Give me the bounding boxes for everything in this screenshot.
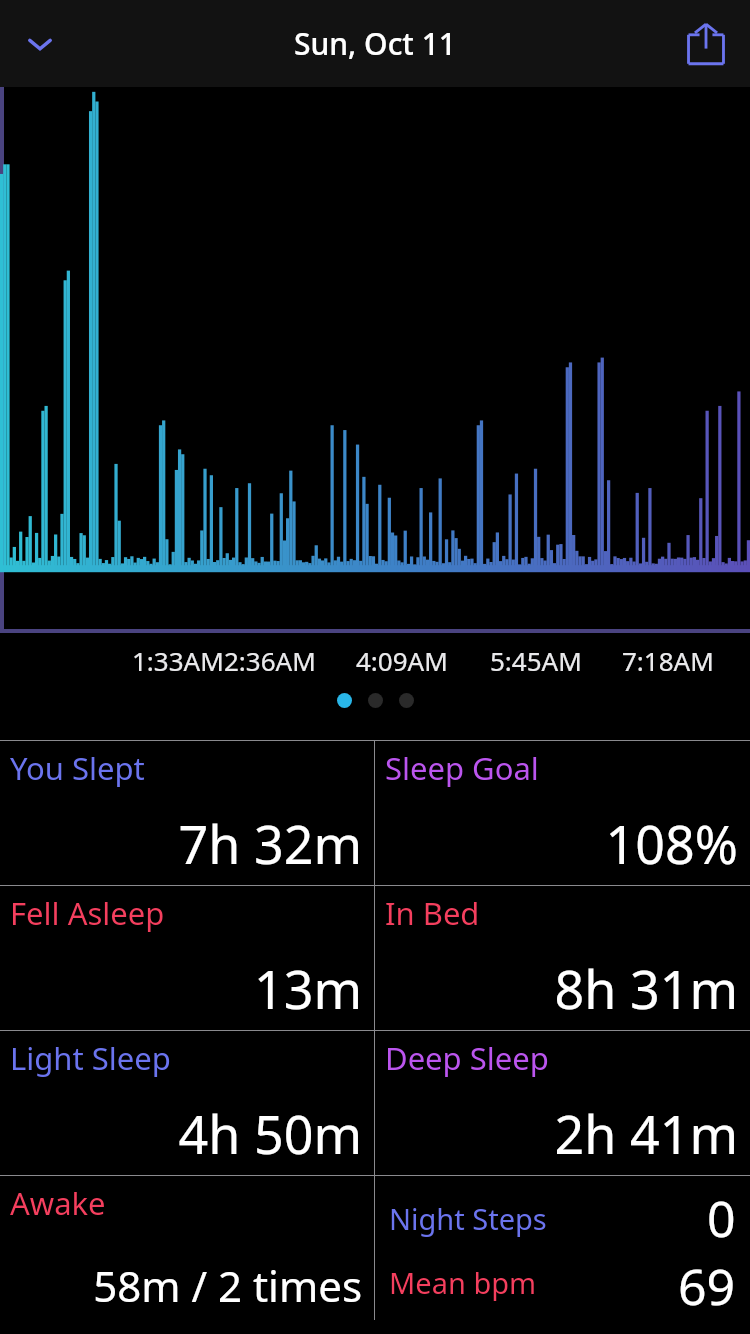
staticText: Deep Sleep xyxy=(385,1037,549,1079)
staticText: 0 xyxy=(707,1184,736,1252)
button[interactable]: Light Sleep xyxy=(0,1031,374,1175)
button[interactable]: Page 2 xyxy=(368,693,383,708)
staticText: Night Steps xyxy=(389,1199,547,1238)
staticText: Light Sleep xyxy=(10,1037,171,1079)
button[interactable]: Night Steps xyxy=(375,1176,750,1320)
button[interactable]: Awake xyxy=(0,1176,374,1320)
staticText: 8h 31m xyxy=(385,953,738,1024)
button[interactable]: Collapse xyxy=(10,14,70,74)
button[interactable]: Fell Asleep xyxy=(0,886,374,1030)
staticText: Mean bpm xyxy=(389,1263,537,1302)
button[interactable]: In Bed xyxy=(375,886,750,1030)
staticText: 4:09AM xyxy=(356,643,448,678)
button[interactable]: Page 3 xyxy=(399,693,414,708)
button[interactable]: Share xyxy=(674,12,738,76)
button[interactable]: Deep Sleep xyxy=(375,1031,750,1175)
staticText: 69 xyxy=(678,1252,736,1312)
staticText: Fell Asleep xyxy=(10,892,165,934)
button[interactable]: Page 1 xyxy=(337,693,352,708)
staticText: 2:36AM xyxy=(224,643,316,678)
button[interactable]: Sleep Goal xyxy=(375,741,750,885)
staticText: 13m xyxy=(10,953,362,1024)
staticText: 108% xyxy=(385,808,738,879)
staticText: Awake xyxy=(10,1182,106,1224)
staticText: 5:45AM xyxy=(490,643,582,678)
staticText: You Slept xyxy=(10,747,145,789)
staticText: 4h 50m xyxy=(10,1098,362,1169)
button[interactable]: You Slept xyxy=(0,741,374,885)
staticText: In Bed xyxy=(385,892,480,934)
staticText: 58m / 2 times xyxy=(10,1257,362,1314)
staticText: 7h 32m xyxy=(10,808,362,879)
staticText: Sun, Oct 11 xyxy=(294,23,456,64)
staticText: 2h 41m xyxy=(385,1098,738,1169)
staticText: Sleep Goal xyxy=(385,747,539,789)
staticText: 7:18AM xyxy=(622,643,714,678)
staticText: 1:33AM xyxy=(132,643,224,678)
